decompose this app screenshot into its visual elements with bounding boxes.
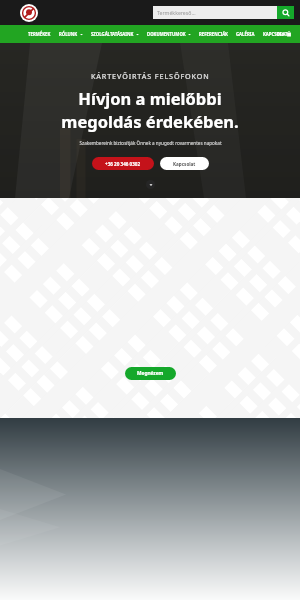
button[interactable]: Termékkereső... (153, 6, 277, 19)
button[interactable]: Logo, kezdőlap (20, 4, 38, 22)
staticText: Termékkereső... (157, 9, 196, 16)
button[interactable]: Megnézem (125, 367, 176, 380)
staticText: Megnézem (137, 370, 164, 377)
staticText: KÁRTEVŐIRTÁS FELSŐFOKON (91, 71, 210, 81)
button[interactable]: TERMÉKEK (24, 25, 55, 43)
button[interactable]: KAPCSOLAT (259, 25, 292, 43)
button[interactable]: RÓLUNK (55, 25, 87, 43)
staticText: REFERENCIÁK (199, 31, 228, 37)
staticText: RÓLUNK (59, 31, 78, 37)
button[interactable]: GALÉRIA (232, 25, 259, 43)
button[interactable]: DOKUMENTUMOK (143, 25, 195, 43)
staticText: 0Ft (277, 31, 284, 37)
button[interactable]: 0Ft (269, 25, 300, 43)
button[interactable]: REFERENCIÁK (195, 25, 232, 43)
staticText: SZOLGÁLTATÁSAINK (91, 31, 134, 37)
button[interactable]: Keresés (277, 6, 294, 19)
button[interactable]: +36 20 346 0302 (92, 157, 154, 170)
staticText: megoldás érdekében. (61, 110, 239, 132)
staticText: Kapcsolat (173, 161, 196, 167)
button[interactable]: Görgetés lefelé (146, 180, 155, 189)
staticText: +36 20 346 0302 (105, 161, 141, 167)
staticText: GALÉRIA (236, 31, 255, 37)
staticText: TERMÉKEK (28, 31, 51, 37)
button[interactable]: SZOLGÁLTATÁSAINK (87, 25, 143, 43)
button[interactable]: Kapcsolat (160, 157, 209, 170)
staticText: Hívjon a mielőbbi (78, 87, 222, 109)
staticText: DOKUMENTUMOK (147, 31, 186, 37)
staticText: KAPCSOLAT (263, 31, 288, 37)
staticText: Szakembereink biztosítják Önnek a nyugod… (79, 140, 222, 146)
